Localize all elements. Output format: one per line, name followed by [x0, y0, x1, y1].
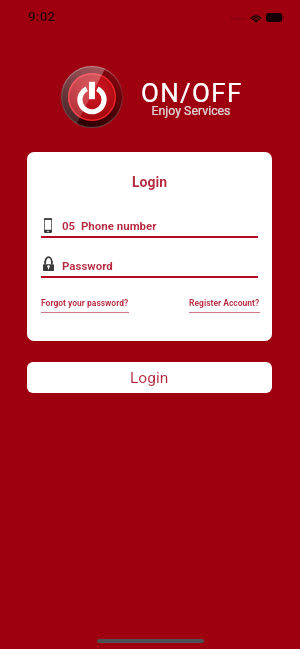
staticText: Register Account? [189, 298, 260, 308]
staticText: 05 Phone number [62, 219, 157, 232]
button[interactable]: Register Account? [189, 298, 260, 313]
staticText: Password [62, 259, 113, 272]
staticText: ON/OFF [141, 78, 243, 108]
staticText: 9:02 [28, 8, 56, 24]
button[interactable]: Password [43, 258, 113, 273]
button[interactable]: 05 Phone number [44, 218, 157, 233]
staticText: Login [27, 174, 272, 190]
button[interactable]: Forgot your password? [41, 298, 129, 313]
staticText: Login [130, 369, 169, 387]
staticText: Forgot your password? [41, 298, 129, 308]
staticText: Enjoy Services [140, 104, 242, 118]
button[interactable]: Login [27, 362, 272, 393]
